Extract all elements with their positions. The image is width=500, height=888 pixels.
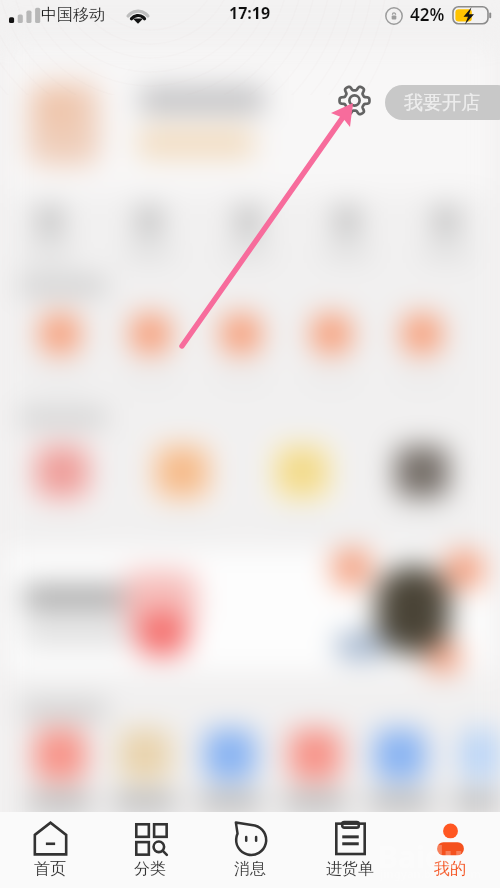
staticText: Baidu [378, 836, 464, 877]
staticText: 消息 [234, 859, 266, 879]
button[interactable]: 我的 [400, 812, 500, 888]
staticText: 我要开店 [404, 91, 480, 115]
staticText: 中国移动 [41, 5, 105, 25]
button[interactable]: 首页 [0, 812, 100, 888]
staticText: 17:19 [229, 2, 271, 24]
staticText: 42% [410, 3, 445, 26]
staticText: 分类 [134, 859, 166, 879]
button[interactable]: 消息 [200, 812, 300, 888]
button[interactable]: Settings [338, 84, 371, 117]
staticText: 首页 [34, 859, 66, 879]
button[interactable]: 进货单 [300, 812, 400, 888]
button[interactable]: 分类 [100, 812, 200, 888]
button[interactable]: 我要开店 [385, 85, 500, 120]
staticText: 我的 [434, 859, 466, 879]
staticText: 进货单 [326, 859, 374, 879]
staticText: jingyan.baidu.com [380, 866, 482, 881]
